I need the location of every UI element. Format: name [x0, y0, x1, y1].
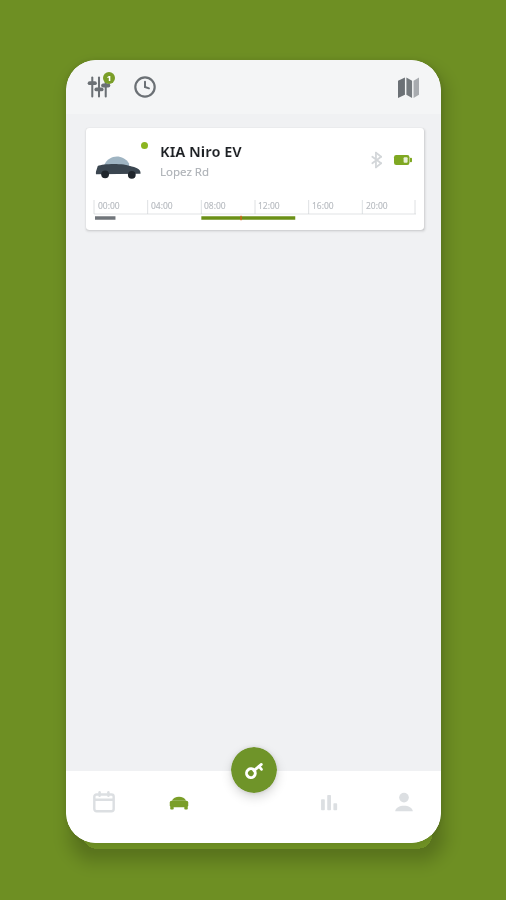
staticText: 20:00: [366, 200, 388, 212]
button[interactable]: KIA Niro EV: [86, 128, 424, 230]
staticText: 1: [107, 73, 112, 83]
staticText: 00:00: [98, 200, 120, 212]
staticText: 04:00: [151, 200, 173, 212]
button[interactable]: Stats: [291, 771, 366, 843]
staticText: Lopez Rd: [160, 164, 210, 180]
button[interactable]: Bookings: [66, 771, 141, 843]
button[interactable]: Vehicles: [141, 771, 216, 843]
button[interactable]: History: [124, 66, 166, 108]
staticText: KIA Niro EV: [160, 141, 242, 161]
button[interactable]: Filters: [78, 66, 120, 108]
button[interactable]: Unlock vehicle: [231, 747, 277, 793]
staticText: 12:00: [258, 200, 280, 212]
staticText: 16:00: [312, 200, 334, 212]
staticText: 08:00: [204, 200, 226, 212]
button[interactable]: Profile: [366, 771, 441, 843]
button[interactable]: Map: [387, 66, 429, 108]
